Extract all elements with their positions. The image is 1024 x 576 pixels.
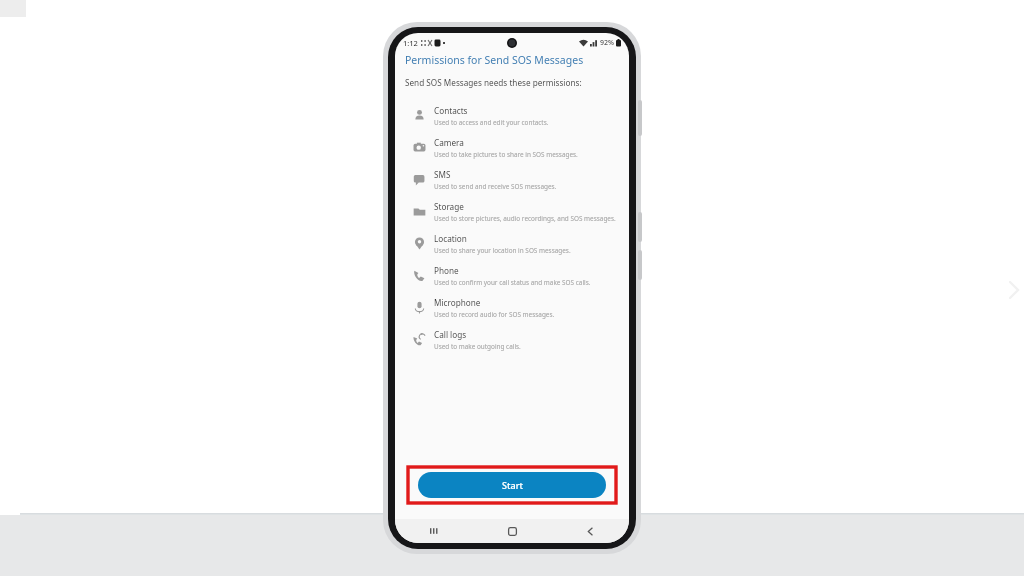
staticText: Used to make outgoing calls. <box>434 342 521 351</box>
staticText: Microphone <box>434 297 481 308</box>
button[interactable]: Call logs <box>405 324 619 356</box>
staticText: SMS <box>434 169 451 180</box>
staticText: 1:12 <box>403 38 418 48</box>
button[interactable]: Contacts <box>405 100 619 132</box>
staticText: Used to send and receive SOS messages. <box>434 182 557 191</box>
staticText: Used to confirm your call status and mak… <box>434 278 591 287</box>
button[interactable]: Home <box>473 519 551 543</box>
staticText: Used to access and edit your contacts. <box>434 118 549 127</box>
button[interactable]: Back <box>551 519 629 543</box>
button[interactable]: Location <box>405 228 619 260</box>
button[interactable]: Recent apps <box>395 519 473 543</box>
staticText: Contacts <box>434 105 468 116</box>
staticText: Send SOS Messages needs these permission… <box>405 77 582 88</box>
staticText: Phone <box>434 265 459 276</box>
button[interactable]: Microphone <box>405 292 619 324</box>
staticText: Storage <box>434 201 464 212</box>
staticText: 92% <box>600 38 614 48</box>
button[interactable]: Start <box>418 472 606 498</box>
staticText: Permissions for Send SOS Messages <box>405 53 584 67</box>
button[interactable]: Camera <box>405 132 619 164</box>
staticText: Used to record audio for SOS messages. <box>434 310 555 319</box>
staticText: Used to store pictures, audio recordings… <box>434 214 616 223</box>
staticText: Used to share your location in SOS messa… <box>434 246 571 255</box>
button[interactable]: Storage <box>405 196 619 228</box>
staticText: Call logs <box>434 329 467 340</box>
staticText: Start <box>502 479 523 491</box>
button[interactable]: SMS <box>405 164 619 196</box>
staticText: Camera <box>434 137 464 148</box>
button[interactable]: Phone <box>405 260 619 292</box>
staticText: Used to take pictures to share in SOS me… <box>434 150 578 159</box>
staticText: Location <box>434 233 467 244</box>
